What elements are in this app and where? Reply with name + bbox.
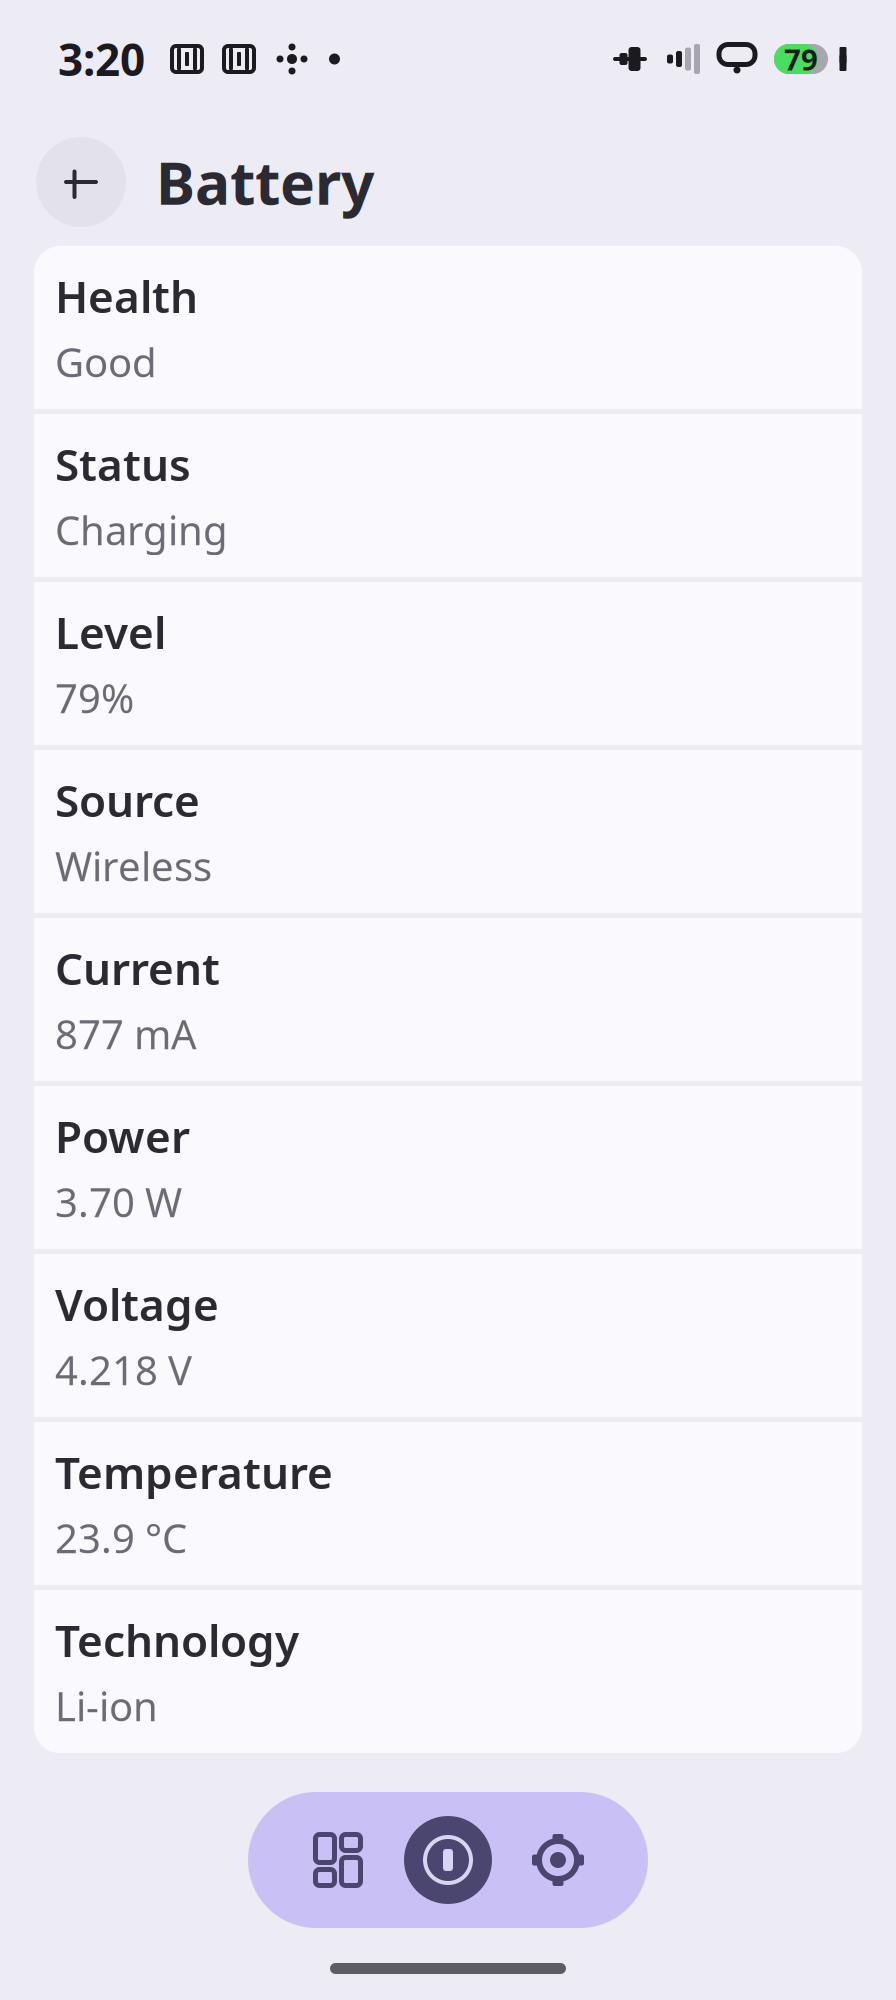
staticText: 877 mA [55, 1007, 197, 1060]
button[interactable]: Explore [393, 1792, 503, 1928]
button[interactable]: Voltage [34, 1254, 862, 1417]
staticText: Power [55, 1107, 190, 1165]
staticText: Li-ion [55, 1679, 158, 1732]
button[interactable]: Back [36, 137, 126, 227]
staticText: Charging [55, 503, 228, 556]
staticText: 79% [55, 671, 134, 724]
button[interactable]: Health [34, 246, 862, 409]
button[interactable]: Power [34, 1086, 862, 1249]
button[interactable]: Source [34, 750, 862, 913]
staticText: 4.218 V [55, 1343, 192, 1396]
staticText: 23.9 °C [55, 1511, 187, 1564]
button[interactable]: Level [34, 582, 862, 745]
button[interactable]: Temperature [34, 1422, 862, 1585]
staticText: Good [55, 335, 157, 388]
button[interactable]: Dashboard [283, 1792, 393, 1928]
staticText: Technology [55, 1611, 299, 1669]
button[interactable]: Settings [503, 1792, 613, 1928]
staticText: 3.70 W [55, 1175, 182, 1228]
button[interactable]: Status [34, 414, 862, 577]
staticText: Wireless [55, 839, 212, 892]
staticText: Current [55, 939, 220, 997]
staticText: Status [55, 435, 191, 493]
staticText: 3:20 [58, 30, 145, 88]
staticText: Health [55, 267, 198, 325]
staticText: Battery [156, 143, 374, 221]
button[interactable]: Current [34, 918, 862, 1081]
staticText: Temperature [55, 1443, 333, 1501]
staticText: Source [55, 771, 200, 829]
staticText: Voltage [55, 1275, 219, 1333]
staticText: Level [55, 603, 166, 661]
button[interactable]: Technology [34, 1590, 862, 1753]
staticText: 79 [784, 39, 818, 78]
